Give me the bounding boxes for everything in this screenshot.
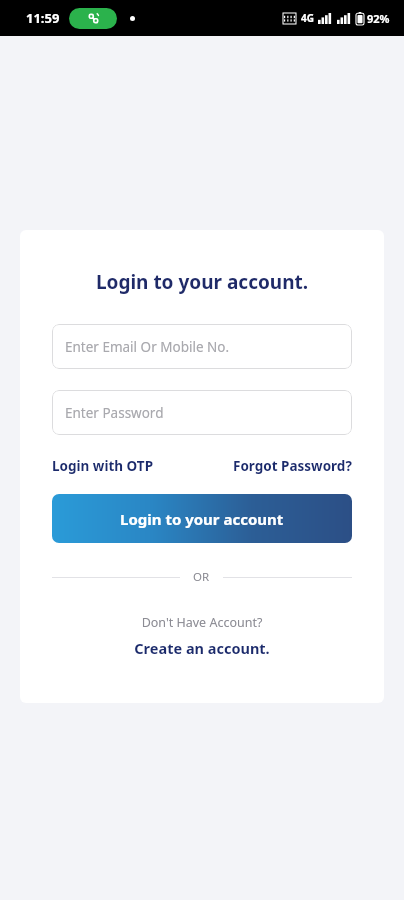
staticText: Enter Password <box>65 404 164 422</box>
staticText: Login to your account <box>120 509 284 529</box>
button[interactable]: Login with OTP <box>52 457 154 475</box>
staticText: 92% <box>367 11 390 26</box>
staticText: 11:59 <box>26 9 60 27</box>
staticText: Login to your account. <box>52 269 352 295</box>
staticText: OR <box>193 569 210 585</box>
button[interactable]: Forgot Password? <box>233 457 352 475</box>
staticText: Enter Email Or Mobile No. <box>65 338 230 356</box>
button[interactable]: Create an account. <box>52 638 352 658</box>
staticText: 4G <box>301 11 314 25</box>
button[interactable]: Login to your account <box>52 494 352 543</box>
staticText: Forgot Password? <box>233 457 352 475</box>
staticText: Create an account. <box>134 638 270 658</box>
staticText: Login with OTP <box>52 457 154 475</box>
button[interactable]: Enter Password <box>52 390 352 435</box>
button[interactable]: Enter Email Or Mobile No. <box>52 324 352 369</box>
staticText: Don't Have Account? <box>52 614 352 631</box>
